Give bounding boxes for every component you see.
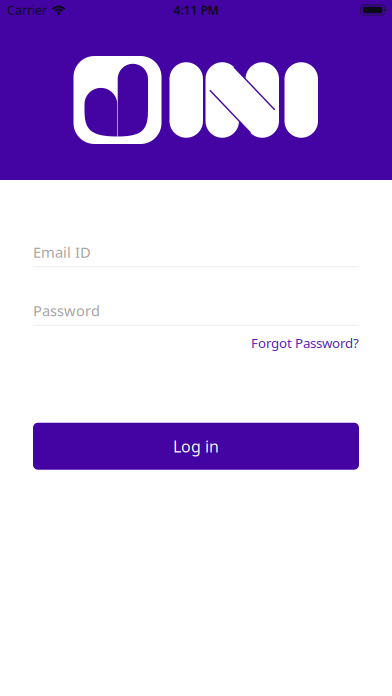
staticText: Forgot Password? — [251, 334, 359, 352]
button[interactable]: Log in — [33, 423, 359, 470]
staticText: Password — [33, 301, 100, 320]
button[interactable]: Forgot Password? — [251, 331, 359, 355]
staticText: 4:11 PM — [173, 2, 218, 18]
staticText: Log in — [173, 436, 219, 457]
staticText: Email ID — [33, 242, 91, 262]
staticText: Carrier — [7, 2, 47, 18]
